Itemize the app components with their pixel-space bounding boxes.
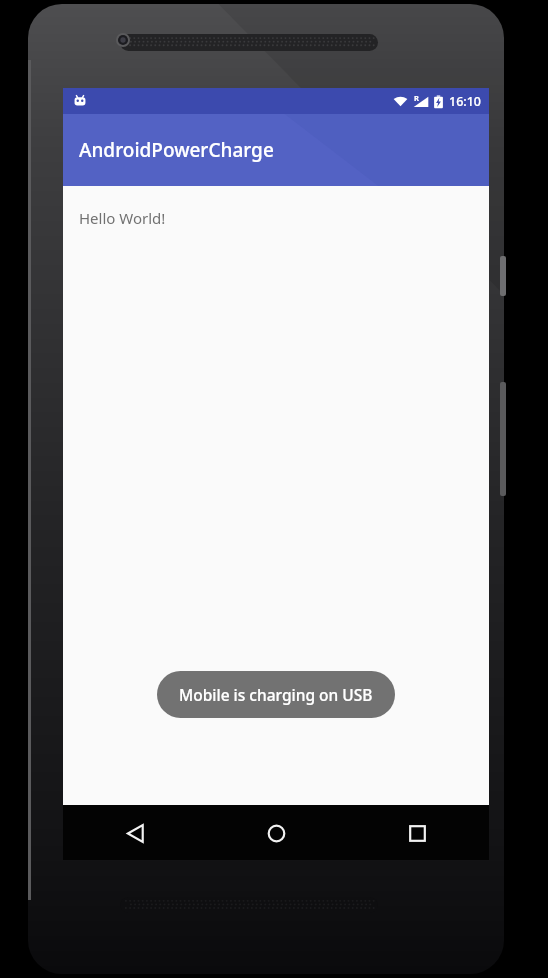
staticText: AndroidPowerCharge: [79, 137, 274, 163]
other: Notification: [72, 93, 88, 109]
staticText: Hello World!: [79, 208, 166, 228]
staticText: Mobile is charging on USB: [179, 684, 373, 705]
button[interactable]: Mobile is charging on USB: [157, 671, 395, 718]
staticText: R: [414, 93, 419, 103]
button[interactable]: Back: [114, 812, 156, 854]
button[interactable]: Home: [255, 812, 297, 854]
button[interactable]: Recent apps: [396, 812, 438, 854]
staticText: 16:10: [449, 93, 482, 110]
